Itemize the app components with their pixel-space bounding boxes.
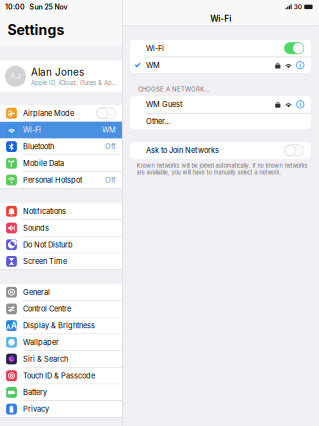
staticText: Bluetooth xyxy=(23,142,54,151)
staticText: AJ xyxy=(10,71,21,81)
staticText: i xyxy=(299,61,301,69)
button[interactable]: Wi-Fi xyxy=(0,122,122,138)
staticText: Control Centre xyxy=(23,304,71,313)
staticText: Other... xyxy=(146,117,170,126)
staticText: Mobile Data xyxy=(23,159,64,168)
staticText: WM xyxy=(102,125,116,134)
button[interactable]: Ask to Join Networks xyxy=(130,142,311,159)
staticText: Apple ID, iCloud, iTunes & App St... xyxy=(31,79,118,86)
staticText: Touch ID & Passcode xyxy=(23,371,95,380)
button[interactable]: Screen Time xyxy=(0,253,122,270)
button[interactable]: Wi-Fi xyxy=(130,40,311,57)
staticText: Airplane Mode xyxy=(23,109,74,118)
staticText: Wi-Fi xyxy=(23,125,41,134)
button[interactable]: Privacy xyxy=(0,401,122,418)
staticText: Notifications xyxy=(23,207,66,216)
staticText: Wi-Fi xyxy=(146,44,164,53)
staticText: Sun 25 Nov xyxy=(29,3,67,11)
button[interactable]: Do Not Disturb xyxy=(0,237,122,253)
staticText: 10:00 xyxy=(5,3,25,11)
staticText: Screen Time xyxy=(23,257,67,266)
button[interactable]: Personal Hotspot xyxy=(0,172,122,189)
staticText: Privacy xyxy=(23,405,49,414)
button[interactable]: Other... xyxy=(130,113,311,129)
staticText: Display & Brightness xyxy=(23,321,95,330)
button[interactable]: General xyxy=(0,284,122,301)
button[interactable]: Mobile Data xyxy=(0,155,122,172)
staticText: Off xyxy=(105,142,116,151)
button[interactable]: Siri & Search xyxy=(0,351,122,368)
staticText: A xyxy=(11,320,17,331)
staticText: Battery xyxy=(23,388,47,397)
staticText: i xyxy=(299,100,301,108)
button[interactable]: Touch ID & Passcode xyxy=(0,368,122,384)
button[interactable]: Airplane Mode xyxy=(0,105,122,122)
staticText: Siri & Search xyxy=(23,354,68,363)
staticText: Alan Jones xyxy=(31,66,84,78)
staticText: A xyxy=(6,324,10,331)
staticText: Settings xyxy=(7,21,64,38)
staticText: Known networks will be joined automatica… xyxy=(136,162,307,176)
staticText: Wallpaper xyxy=(23,338,59,347)
button[interactable]: WM Guest xyxy=(130,96,311,113)
staticText: WM Guest xyxy=(146,100,182,109)
button[interactable]: Control Centre xyxy=(0,301,122,317)
button[interactable]: A xyxy=(0,317,122,334)
button[interactable]: Sounds xyxy=(0,220,122,237)
staticText: Sounds xyxy=(23,223,49,232)
staticText: Ask to Join Networks xyxy=(146,146,219,155)
button[interactable]: Notifications xyxy=(0,203,122,220)
staticText: Off xyxy=(105,175,116,184)
staticText: Personal Hotspot xyxy=(23,175,82,184)
staticText: WM xyxy=(146,61,160,70)
button[interactable]: Wallpaper xyxy=(0,334,122,351)
button[interactable]: Bluetooth xyxy=(0,138,122,155)
button[interactable]: AJ xyxy=(0,60,122,92)
staticText: General xyxy=(23,288,50,297)
staticText: Wi-Fi xyxy=(210,14,231,24)
staticText: 30 xyxy=(294,3,302,11)
button[interactable]: Battery xyxy=(0,384,122,401)
button[interactable]: WM xyxy=(130,57,311,73)
staticText: CHOOSE A NETWORK... xyxy=(138,86,210,93)
staticText: Do Not Disturb xyxy=(23,240,73,249)
